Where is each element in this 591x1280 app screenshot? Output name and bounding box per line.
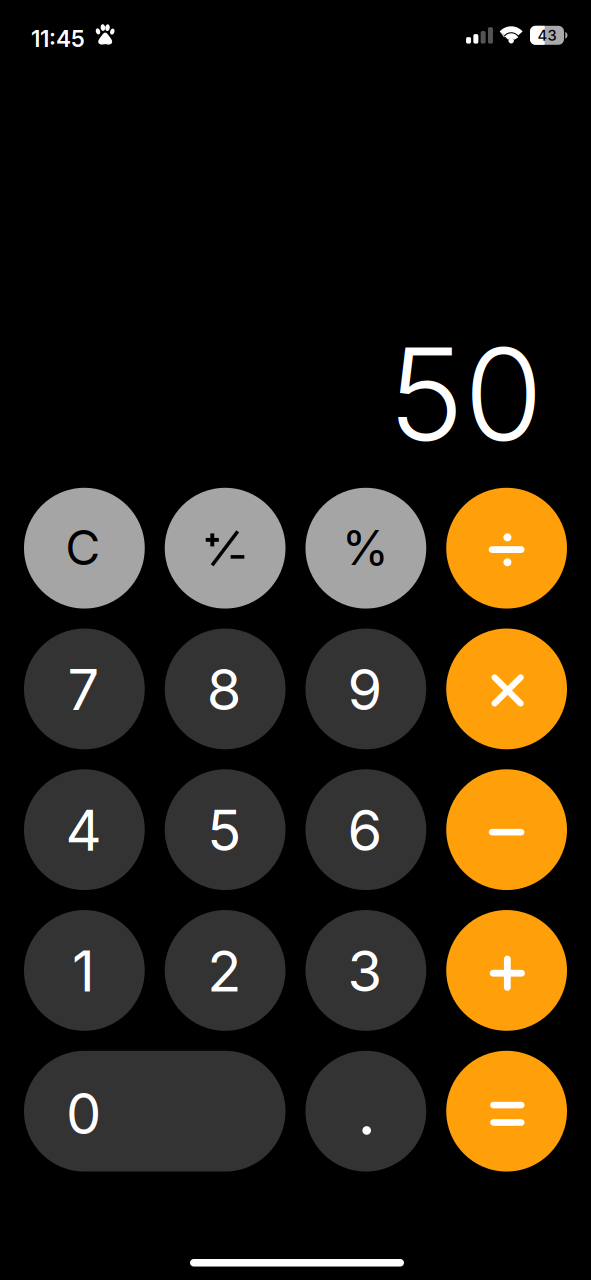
button[interactable]: 1 [24, 910, 145, 1031]
button[interactable]: 6 [305, 769, 426, 890]
staticText: 9 [348, 656, 383, 724]
button[interactable]: 2 [165, 910, 286, 1031]
staticText: 8 [207, 656, 242, 724]
button[interactable]: 7 [24, 628, 145, 749]
button[interactable]: 5 [165, 769, 286, 890]
button[interactable]: 3 [305, 910, 426, 1031]
button[interactable]: Plus [446, 910, 567, 1031]
button[interactable]: 9 [305, 628, 426, 749]
staticText: 7 [68, 656, 100, 724]
staticText: 43 [537, 26, 556, 44]
staticText: 1 [72, 937, 95, 1005]
button[interactable]: 4 [24, 769, 145, 890]
button[interactable]: Divide [446, 488, 567, 609]
staticText: 2 [207, 937, 241, 1005]
staticText: 6 [348, 797, 383, 864]
button[interactable]: 0 [24, 1051, 285, 1172]
staticText: 11:45 [31, 25, 85, 52]
staticText: 0 [66, 1080, 101, 1147]
button[interactable]: Equals [446, 1051, 567, 1172]
button[interactable]: % [305, 488, 426, 609]
staticText: 4 [66, 797, 102, 864]
staticText: 50 [388, 317, 543, 471]
staticText: % [342, 518, 389, 576]
staticText: C [65, 518, 100, 576]
staticText: 3 [348, 937, 383, 1005]
button[interactable]: Plus minus [165, 488, 286, 609]
button[interactable]: C [24, 488, 145, 609]
button[interactable]: Decimal point [305, 1051, 426, 1172]
button[interactable]: Minus [446, 769, 567, 890]
staticText: 5 [207, 797, 241, 864]
button[interactable]: Multiply [446, 628, 567, 749]
button[interactable]: 8 [165, 628, 286, 749]
